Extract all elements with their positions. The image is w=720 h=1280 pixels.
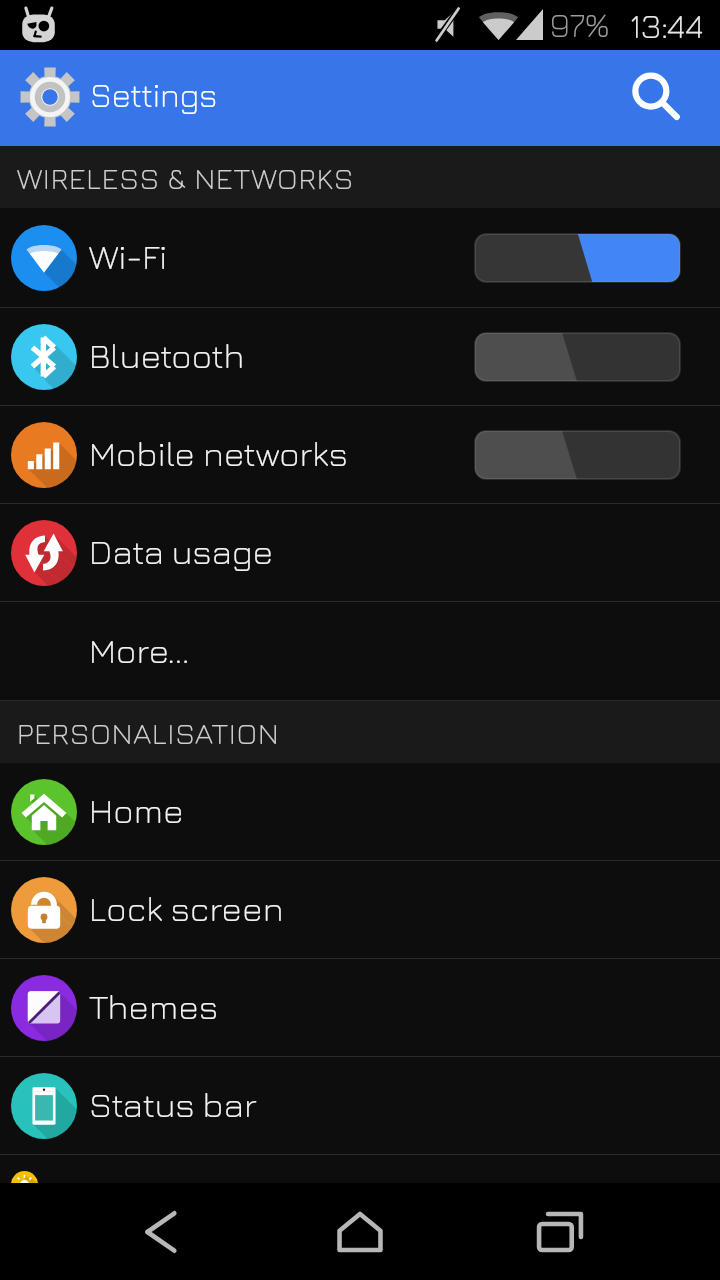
button[interactable]: Back	[101, 1183, 221, 1280]
staticText: Mobile networks	[89, 432, 348, 473]
staticText: Data usage	[89, 530, 274, 571]
staticText: Themes	[89, 985, 218, 1026]
button[interactable]: Recents	[500, 1183, 620, 1280]
button[interactable]: Bluetooth	[0, 308, 720, 406]
staticText: Settings	[90, 75, 218, 114]
staticText: 13:44	[629, 4, 704, 45]
button[interactable]: Wi-Fi	[0, 208, 720, 308]
staticText: Lock screen	[89, 887, 284, 928]
button[interactable]: Search	[611, 50, 707, 146]
staticText: Home	[89, 789, 184, 830]
staticText: WIRELESS & NETWORKS	[17, 160, 355, 195]
button[interactable]: More...	[0, 602, 720, 701]
button[interactable]: Data usage	[0, 504, 720, 602]
button[interactable]: Status bar	[0, 1057, 720, 1155]
button[interactable]	[475, 234, 680, 282]
staticText: More...	[89, 629, 190, 670]
button[interactable]: Home	[300, 1183, 420, 1280]
staticText: Status bar	[89, 1083, 257, 1124]
staticText: 97%	[550, 4, 610, 44]
staticText: Wi-Fi	[89, 235, 168, 276]
button[interactable]	[0, 1155, 720, 1182]
button[interactable]	[475, 333, 680, 381]
button[interactable]: Home	[0, 763, 720, 861]
button[interactable]: Lock screen	[0, 861, 720, 959]
button[interactable]	[475, 431, 680, 479]
staticText: PERSONALISATION	[17, 715, 280, 750]
staticText: Bluetooth	[89, 334, 245, 375]
button[interactable]: Mobile networks	[0, 406, 720, 504]
button[interactable]: Themes	[0, 959, 720, 1057]
